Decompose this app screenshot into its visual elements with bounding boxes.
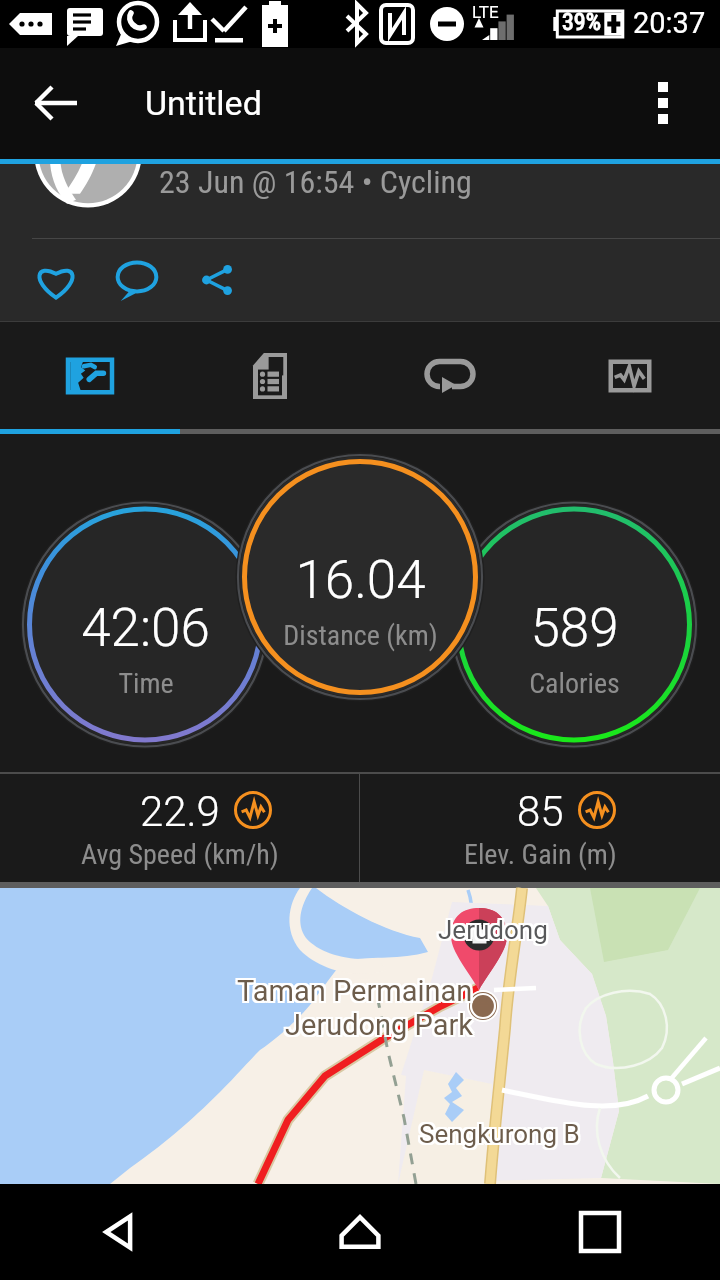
staticText: Jerudong [436,915,546,945]
staticText: Sengkurong B [417,1121,578,1151]
staticText: Jerudong Park [283,1006,472,1040]
staticText: LTE [472,2,499,22]
staticText: Jerudong [436,917,546,947]
staticText: Sengkurong B [417,1117,578,1147]
button[interactable]: Navigate up [22,69,90,137]
button[interactable]: Share [187,250,247,310]
staticText: Taman Permainan [237,974,473,1008]
staticText: Jerudong [438,917,548,947]
staticText: Jerudong Park [285,1010,474,1044]
staticText: Jerudong Park [283,1008,472,1042]
staticText: Jerudong Park [287,1006,476,1040]
staticText: Jerudong [438,915,548,945]
staticText: Sengkurong B [419,1119,580,1149]
staticText: Taman Permainan [237,976,473,1010]
staticText: Jerudong Park [285,1006,474,1040]
staticText: Calories [529,667,620,700]
staticText: 20:37 [633,6,706,40]
staticText: Sengkurong B [419,1121,580,1151]
staticText: 85 [517,787,564,836]
button[interactable]: Home [240,1184,480,1280]
staticText: Sengkurong B [417,1119,578,1149]
staticText: 23 Jun @ 16:54 • Cycling [159,164,472,201]
button[interactable]: Details [180,322,360,429]
staticText: Sengkurong B [421,1117,582,1147]
staticText: Jerudong [438,913,548,943]
button[interactable]: 22.9 [0,774,359,882]
staticText: Taman Permainan [235,972,471,1006]
button[interactable]: Map [0,322,180,429]
staticText: Avg Speed (km/h) [81,838,279,871]
staticText: 589 [530,597,619,659]
staticText: Distance (km) [283,619,438,652]
staticText: Jerudong Park [283,1010,472,1044]
staticText: 16.04 [295,549,426,611]
staticText: 42:06 [81,597,210,659]
button[interactable]: Comment [107,250,167,310]
staticText: Jerudong [440,915,550,945]
button[interactable]: Recent apps [480,1184,720,1280]
staticText: Taman Permainan [235,974,471,1008]
staticText: Taman Permainan [237,972,473,1006]
staticText: Taman Permainan [235,976,471,1010]
staticText: Time [118,667,174,700]
staticText: Jerudong [440,917,550,947]
staticText: Sengkurong B [419,1117,580,1147]
staticText: Jerudong Park [287,1008,476,1042]
staticText: Taman Permainan [239,972,475,1006]
staticText: Jerudong [436,913,546,943]
staticText: Jerudong Park [287,1010,476,1044]
button[interactable]: More options [627,67,699,139]
staticText: Taman Permainan [239,974,475,1008]
button[interactable]: 85 [360,774,720,882]
staticText: 22.9 [140,787,220,836]
button[interactable]: Laps [360,322,540,429]
button[interactable]: Back [0,1184,240,1280]
staticText: Sengkurong B [421,1119,582,1149]
staticText: Taman Permainan [239,976,475,1010]
button[interactable]: Like [26,250,86,310]
staticText: 39% [562,8,601,36]
staticText: Elev. Gain (m) [464,838,617,871]
staticText: Sengkurong B [421,1121,582,1151]
staticText: Untitled [145,83,262,123]
button[interactable]: Graphs [540,322,720,429]
staticText: Jerudong Park [285,1008,474,1042]
staticText: Jerudong [440,913,550,943]
